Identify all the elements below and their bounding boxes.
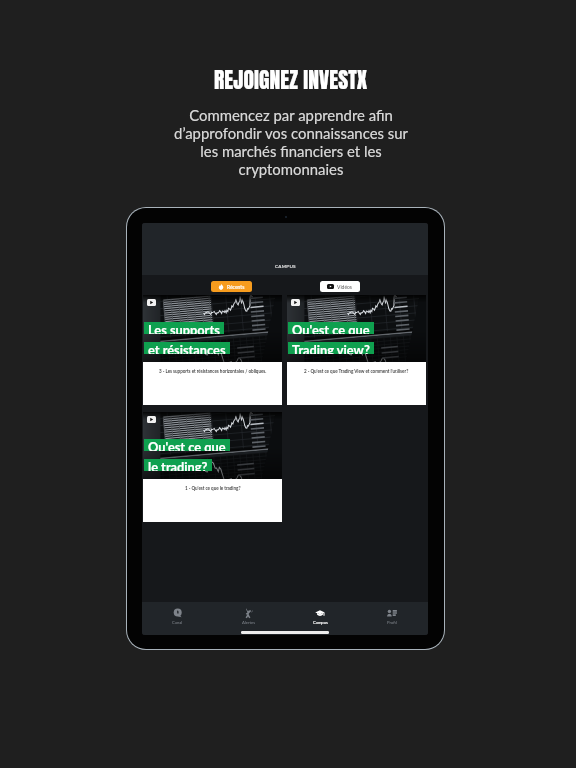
button[interactable]: Profil bbox=[356, 602, 428, 630]
staticText: 3 - Les supports et résistances horizont… bbox=[159, 368, 267, 374]
staticText: Profil bbox=[387, 620, 397, 625]
button[interactable]: Qu'est ce que bbox=[143, 412, 282, 522]
staticText: Campus bbox=[313, 620, 328, 625]
button[interactable]: Qu'est ce que bbox=[287, 295, 426, 405]
staticText: le trading? bbox=[148, 459, 208, 471]
staticText: 2 - Qu'est ce que Trading View et commen… bbox=[304, 368, 409, 374]
staticText: et résistances bbox=[148, 342, 226, 354]
staticText: Alertes bbox=[242, 620, 256, 625]
staticText: REJOIGNEZ INVESTX bbox=[214, 64, 368, 96]
button[interactable]: Campus bbox=[284, 602, 356, 630]
staticText: CAMPUS bbox=[275, 263, 296, 269]
staticText: Qu'est ce que bbox=[292, 322, 370, 334]
button[interactable]: Les supports bbox=[143, 295, 282, 405]
staticText: Trading view? bbox=[292, 342, 370, 354]
staticText: Canal bbox=[172, 620, 183, 625]
staticText: Commencez par apprendre afin d’approfond… bbox=[174, 106, 408, 178]
button[interactable]: Vidéos bbox=[320, 281, 360, 292]
button[interactable]: CAMPUS bbox=[142, 223, 428, 275]
button[interactable]: Récents bbox=[211, 281, 252, 292]
staticText: Qu'est ce que bbox=[148, 439, 226, 451]
button[interactable]: Canal bbox=[142, 602, 213, 630]
staticText: 1 - Qu'est ce que le trading? bbox=[185, 485, 241, 491]
button[interactable]: Alertes bbox=[213, 602, 284, 630]
staticText: Récents bbox=[227, 284, 245, 290]
staticText: Les supports bbox=[148, 322, 220, 334]
staticText: Vidéos bbox=[337, 284, 353, 290]
